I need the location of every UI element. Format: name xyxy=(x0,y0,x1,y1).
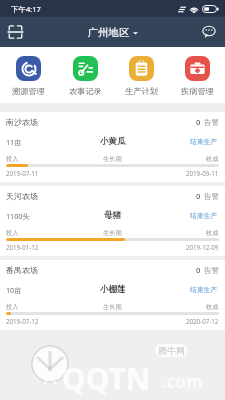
staticText: 0 xyxy=(196,117,201,127)
staticText: 投入 xyxy=(6,229,19,237)
staticText: 母猪 xyxy=(104,210,121,221)
staticText: 告警 xyxy=(204,266,219,275)
staticText: 0 xyxy=(196,265,201,275)
staticText: 结束生产 xyxy=(190,137,218,146)
staticText: 广州地区 xyxy=(88,26,130,39)
staticText: 天河农场 xyxy=(6,191,38,201)
button[interactable]: 消息 xyxy=(197,20,221,44)
staticText: 收成 xyxy=(206,229,219,237)
staticText: 下午4:17 xyxy=(11,4,41,14)
staticText: 告警 xyxy=(204,192,219,201)
staticText: QQTN xyxy=(62,358,151,399)
button[interactable]: 疾病管理 xyxy=(177,56,218,96)
staticText: 2019-01-12 xyxy=(6,243,39,251)
button[interactable]: 天河农场 xyxy=(0,186,225,256)
staticText: 结束生产 xyxy=(190,285,218,294)
staticText: 0 xyxy=(196,191,201,201)
button[interactable]: 农事记录 xyxy=(65,56,106,96)
staticText: 2019-07-11 xyxy=(6,169,39,177)
button[interactable]: 广州地区 xyxy=(84,24,142,41)
button[interactable]: 结束生产 xyxy=(189,210,219,221)
staticText: 收成 xyxy=(206,155,219,163)
staticText: 11亩 xyxy=(6,137,22,147)
staticText: 南沙农场 xyxy=(6,117,38,127)
staticText: 生长期 xyxy=(103,303,122,311)
button[interactable]: 结束生产 xyxy=(189,284,219,295)
staticText: 2019-09-11 xyxy=(186,169,219,177)
staticText: 腾牛网 xyxy=(158,345,185,356)
staticText: 2019-12-09 xyxy=(186,243,219,251)
staticText: .com xyxy=(162,370,203,393)
button[interactable]: 结束生产 xyxy=(189,136,219,147)
staticText: 2020-07-12 xyxy=(186,317,219,325)
staticText: 小棚莲 xyxy=(100,284,126,295)
staticText: 投入 xyxy=(6,303,19,311)
staticText: 告警 xyxy=(204,118,219,127)
staticText: 收成 xyxy=(206,303,219,311)
staticText: 溯源管理 xyxy=(12,86,45,96)
staticText: 生产计划 xyxy=(125,86,158,96)
staticText: 生长期 xyxy=(103,155,122,163)
staticText: 2019-07-12 xyxy=(6,317,39,325)
button[interactable]: 溯源管理 xyxy=(8,56,49,96)
staticText: 疾病管理 xyxy=(181,86,214,96)
staticText: 农事记录 xyxy=(69,86,102,96)
staticText: 小黄瓜 xyxy=(100,136,126,147)
button[interactable]: 扫一扫 xyxy=(3,20,27,44)
staticText: 1100头 xyxy=(6,211,30,221)
staticText: 结束生产 xyxy=(190,211,218,220)
button[interactable]: 南沙农场 xyxy=(0,112,225,182)
staticText: 番禺农场 xyxy=(6,265,38,275)
staticText: 生长期 xyxy=(103,229,122,237)
button[interactable]: 番禺农场 xyxy=(0,260,225,330)
staticText: 投入 xyxy=(6,155,19,163)
staticText: 10亩 xyxy=(6,285,22,295)
button[interactable]: 生产计划 xyxy=(121,56,162,96)
